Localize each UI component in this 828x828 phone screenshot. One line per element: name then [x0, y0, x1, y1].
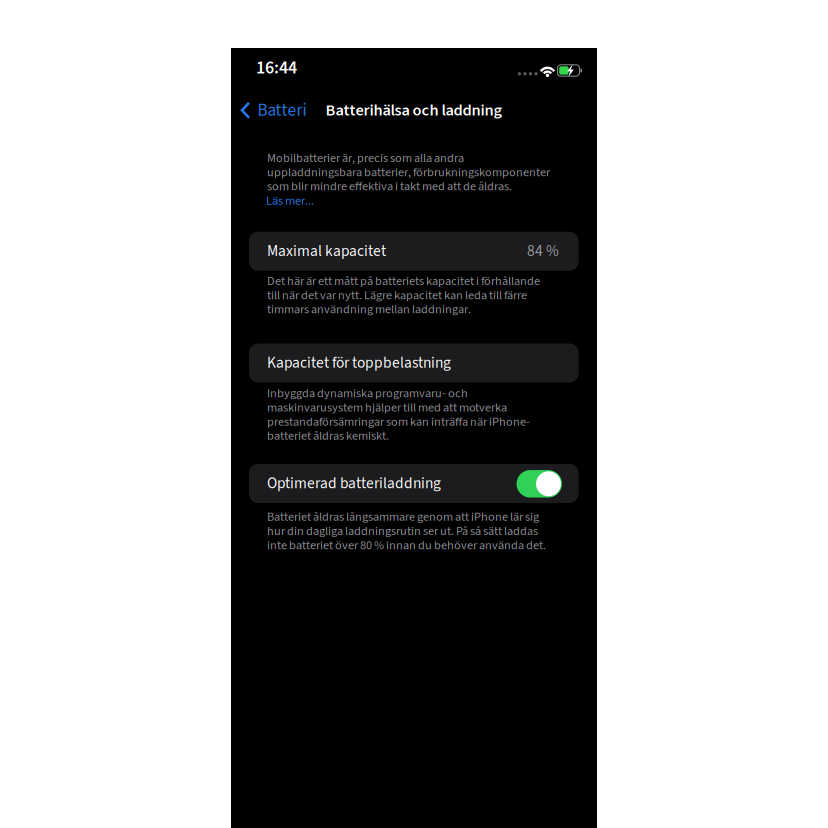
- button[interactable]: Batteri: [240, 98, 306, 123]
- staticText: Batteriet åldras långsammare genom att i…: [267, 508, 539, 526]
- staticText: Inbyggda dynamiska programvaru- och: [267, 385, 468, 402]
- staticText: 84 %: [527, 240, 559, 262]
- staticText: inte batteriet över 80 % innan du behöve…: [267, 536, 546, 554]
- staticText: Maximal kapacitet: [267, 240, 386, 262]
- staticText: batteriet åldras kemiskt.: [267, 427, 389, 445]
- staticText: Batteri: [257, 98, 306, 123]
- button[interactable]: Kapacitet för toppbelastning: [249, 343, 578, 382]
- staticText: maskinvarusystem hjälper till med att mo…: [267, 399, 507, 416]
- staticText: prestandaförsämringar som kan inträffa n…: [267, 413, 530, 430]
- button[interactable]: Optimerad batteriladdning: [516, 470, 562, 498]
- staticText: hur din dagliga laddningsrutin ser ut. P…: [267, 522, 538, 540]
- button[interactable]: Läs mer...: [266, 192, 314, 209]
- staticText: Kapacitet för toppbelastning: [267, 352, 451, 374]
- staticText: Batterihälsa och laddning: [325, 99, 502, 122]
- staticText: som blir mindre effektiva i takt med att…: [267, 178, 512, 195]
- staticText: Mobilbatterier är, precis som alla andra: [267, 149, 464, 167]
- staticText: uppladdningsbara batterier, förbruknings…: [267, 164, 550, 181]
- staticText: Optimerad batteriladdning: [267, 472, 441, 494]
- staticText: Läs mer...: [266, 192, 314, 209]
- staticText: timmars användning mellan laddningar.: [267, 301, 471, 318]
- staticText: till när det var nytt. Lägre kapacitet k…: [267, 286, 527, 304]
- staticText: Det här är ett mått på batteriets kapaci…: [267, 272, 540, 290]
- staticText: 16:44: [256, 55, 297, 81]
